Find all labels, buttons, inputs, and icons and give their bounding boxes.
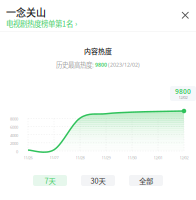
button[interactable]: 全部 xyxy=(129,175,163,186)
staticText: 7天 xyxy=(44,175,55,186)
button[interactable]: 7天 xyxy=(33,175,67,186)
staticText: 全部 xyxy=(139,175,153,186)
staticText: 历史最高热度: xyxy=(56,60,95,69)
staticText: 30天 xyxy=(90,175,105,186)
staticText: 11/26 xyxy=(23,155,32,160)
staticText: 11/30 xyxy=(127,155,136,160)
staticText: 6000 xyxy=(10,124,18,130)
staticText: 8000 xyxy=(10,116,18,122)
button[interactable]: Close xyxy=(177,7,193,23)
staticText: 9800 xyxy=(175,87,191,96)
staticText: 11/27 xyxy=(49,155,58,160)
staticText: 2000 xyxy=(10,141,18,146)
staticText: 11/29 xyxy=(101,155,110,160)
staticText: 4000 xyxy=(10,133,18,138)
staticText: 12/01 xyxy=(153,155,162,160)
staticText: 一念关山 xyxy=(6,5,46,19)
staticText: 0 xyxy=(16,149,18,154)
staticText: 12/02 xyxy=(179,155,188,160)
staticText: 12/02 xyxy=(178,95,187,100)
staticText: 11/28 xyxy=(75,155,84,160)
button[interactable]: 30天 xyxy=(81,175,115,186)
button[interactable]: 电视剧热度榜单第1名 › xyxy=(6,17,77,30)
staticText: 9800 xyxy=(95,61,107,68)
staticText: 电视剧热度榜单第1名 › xyxy=(6,18,77,29)
staticText: 内容热度 xyxy=(84,46,112,56)
staticText: (2023/12/02) xyxy=(107,61,140,68)
